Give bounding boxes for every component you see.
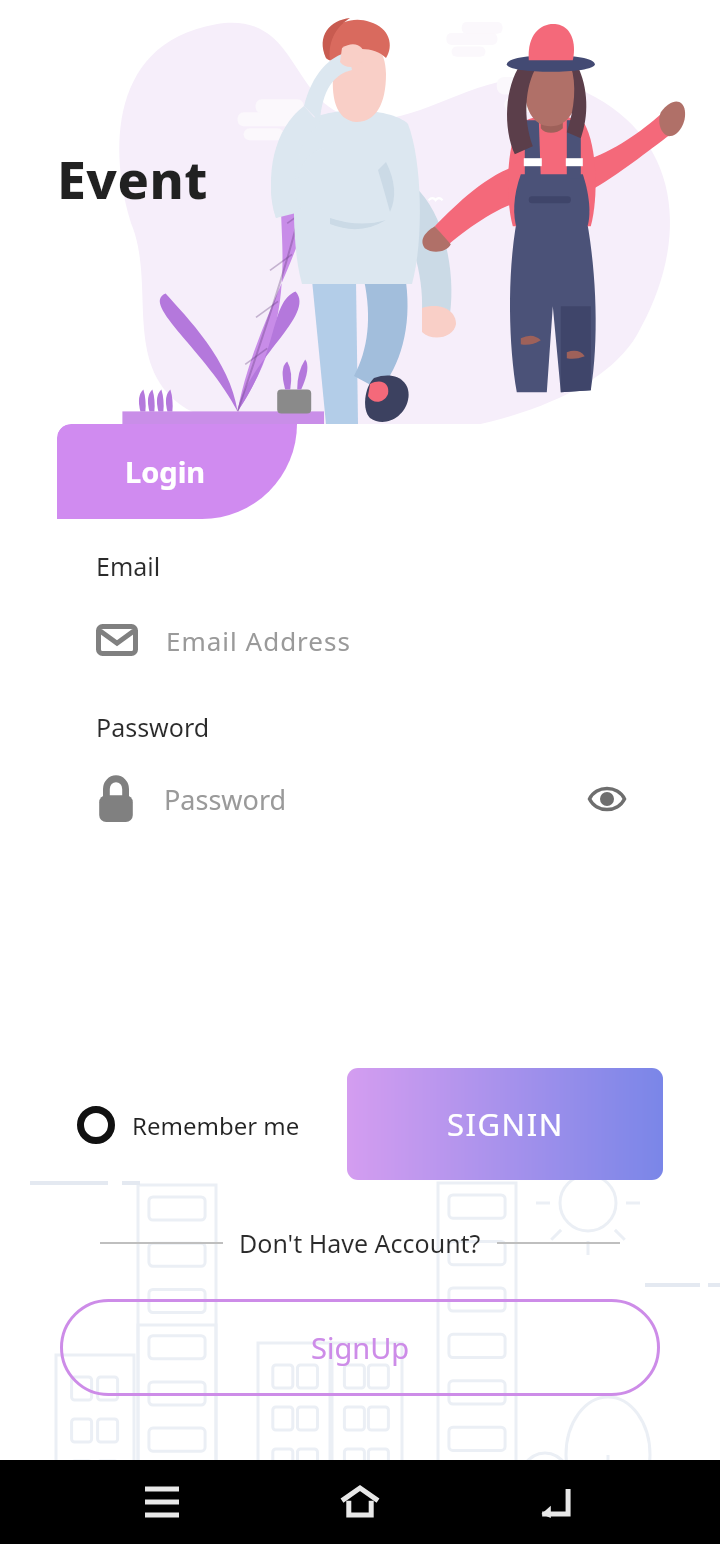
staticText: Password (96, 710, 210, 744)
button[interactable]: Back (522, 1466, 594, 1538)
staticText: Don't Have Account? (239, 1226, 481, 1260)
button[interactable]: Remember me (77, 1099, 300, 1151)
button[interactable]: SignUp (60, 1299, 660, 1396)
button[interactable]: Recent apps (126, 1466, 198, 1538)
staticText: Email (96, 549, 161, 583)
staticText: Event (57, 143, 209, 214)
staticText: Remember me (132, 1109, 300, 1142)
button[interactable]: Email Address (96, 614, 633, 666)
staticText: Login (125, 452, 206, 491)
staticText: Email Address (166, 623, 351, 658)
button[interactable]: Show password (581, 773, 633, 825)
button[interactable]: Password (96, 771, 633, 827)
staticText: SignUp (311, 1328, 410, 1367)
staticText: SIGNIN (447, 1103, 564, 1145)
button[interactable]: SIGNIN (347, 1068, 663, 1180)
staticText: Password (164, 781, 287, 818)
button[interactable]: Home (324, 1466, 396, 1538)
button[interactable]: Login (57, 424, 297, 519)
